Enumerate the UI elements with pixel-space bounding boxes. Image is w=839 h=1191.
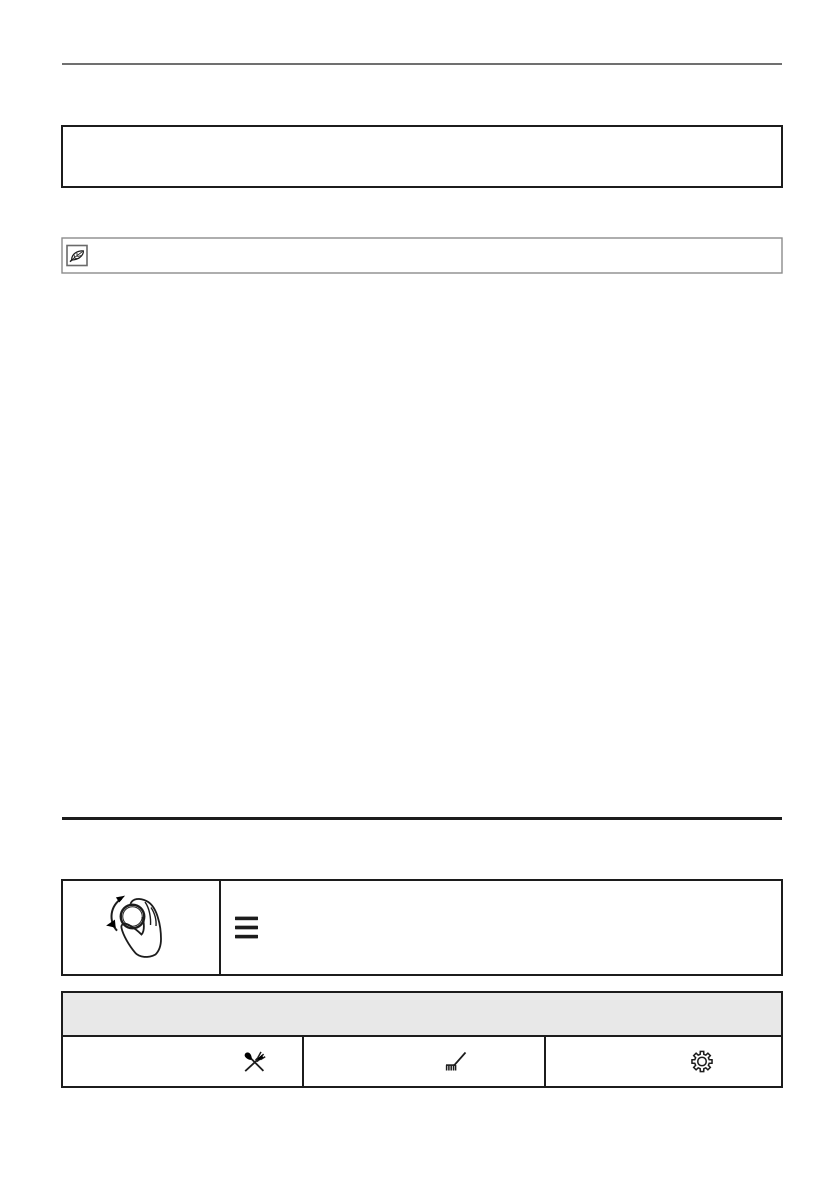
button[interactable]: Dining xyxy=(62,1037,302,1086)
button[interactable]: Garden xyxy=(304,1037,544,1086)
button[interactable]: Menu xyxy=(221,916,258,938)
button[interactable]: Leaf xyxy=(67,245,87,265)
button[interactable]: Settings xyxy=(546,1037,782,1086)
